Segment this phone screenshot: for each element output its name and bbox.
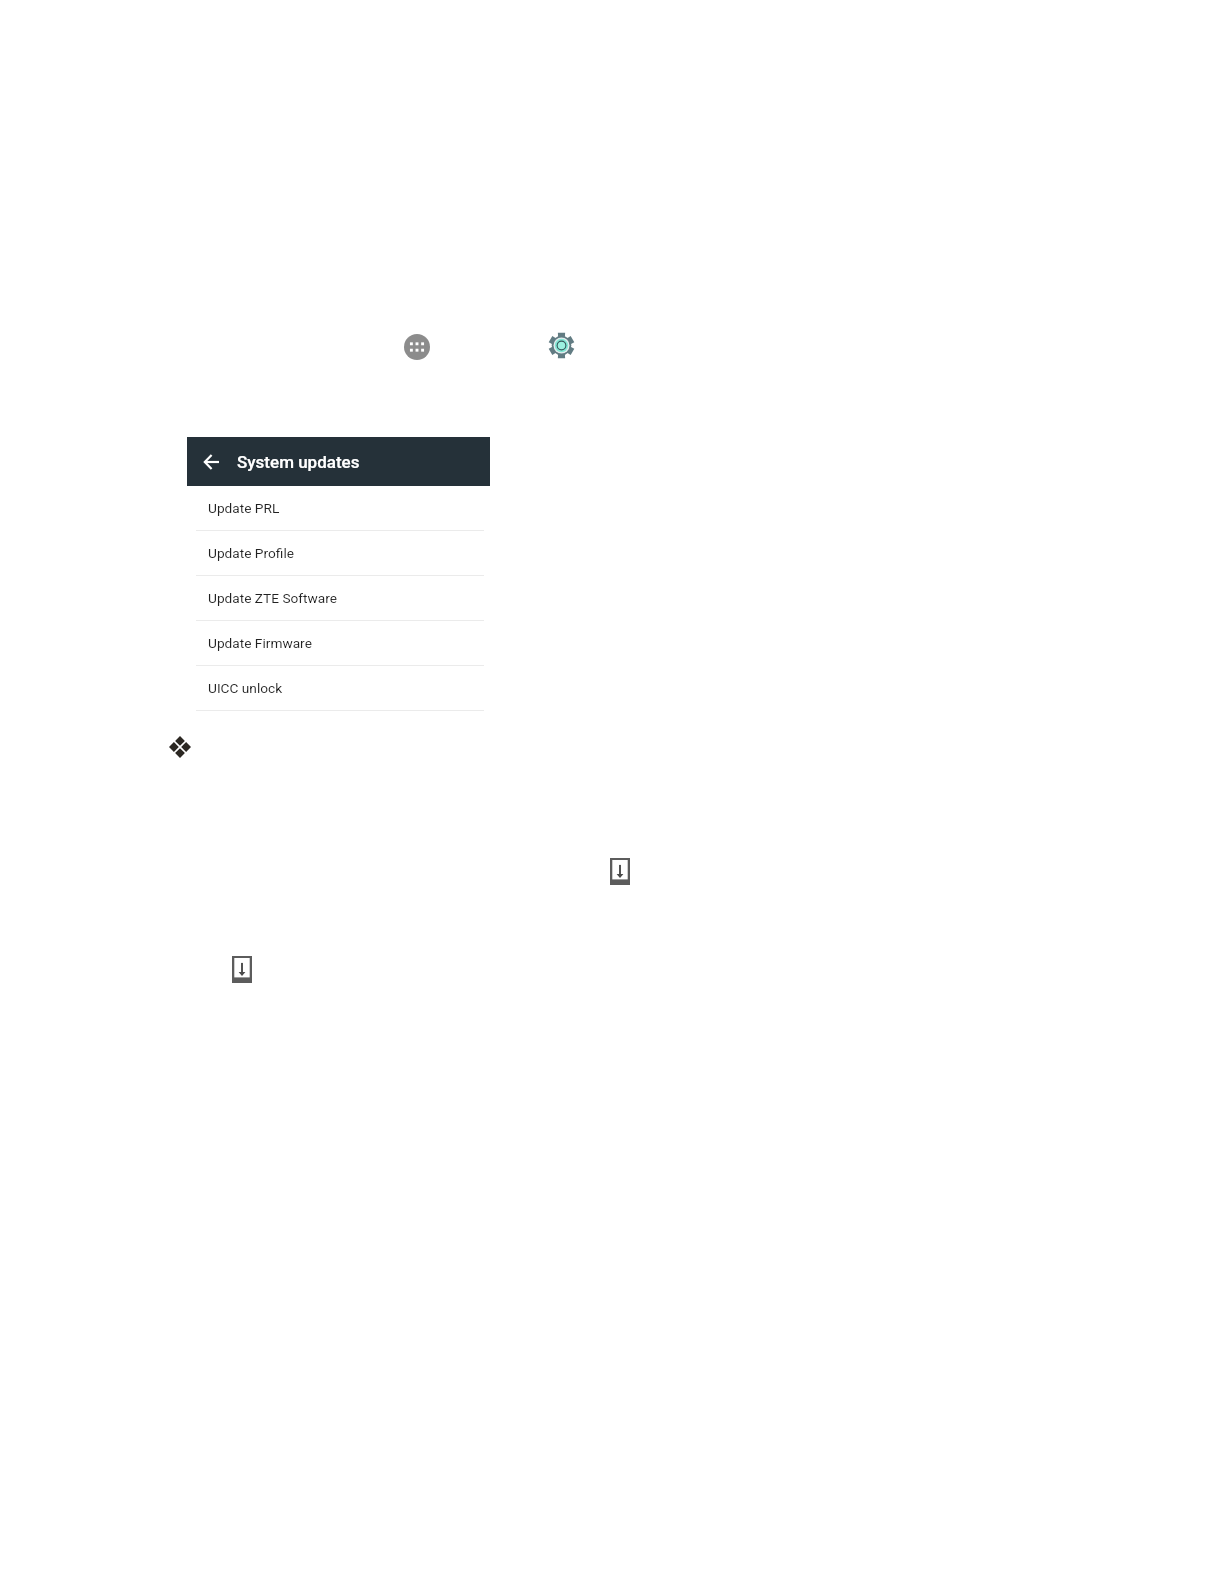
button[interactable]: Update Firmware: [187, 621, 490, 666]
button[interactable]: All apps: [404, 334, 430, 360]
button[interactable]: Update ZTE Software: [187, 576, 490, 621]
staticText: Update Firmware: [208, 635, 312, 651]
button[interactable]: Download update: [232, 956, 252, 983]
staticText: System updates: [237, 452, 360, 472]
button[interactable]: Navigate up: [187, 437, 236, 486]
button[interactable]: Apps: [169, 736, 191, 758]
staticText: Update ZTE Software: [208, 590, 338, 606]
button[interactable]: Update Profile: [187, 531, 490, 576]
staticText: Update PRL: [208, 500, 280, 516]
button[interactable]: Settings: [547, 331, 576, 360]
button[interactable]: Download update: [610, 858, 630, 885]
button[interactable]: Update PRL: [187, 486, 490, 531]
staticText: Update Profile: [208, 545, 294, 561]
button[interactable]: UICC unlock: [187, 666, 490, 711]
staticText: UICC unlock: [208, 680, 283, 696]
